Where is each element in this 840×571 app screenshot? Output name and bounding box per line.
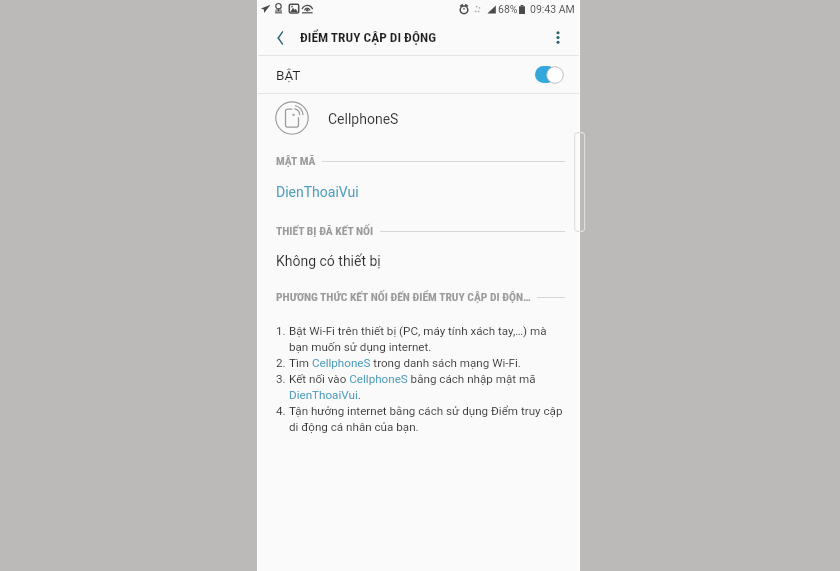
staticText: DienThoaiVui	[276, 184, 359, 200]
staticText: 3.	[276, 372, 289, 386]
staticText: 4.	[276, 404, 289, 418]
staticText: BẬT	[276, 67, 301, 83]
staticText: Kết nối vào CellphoneS bằng cách nhập mậ…	[289, 372, 565, 401]
staticText: 68%	[498, 3, 518, 15]
staticText: Tìm CellphoneS trong danh sách mạng Wi-F…	[289, 356, 521, 370]
staticText: 1.	[276, 324, 289, 338]
staticText: PHƯƠNG THỨC KẾT NỐI ĐẾN ĐIỂM TRUY CẬP DI…	[276, 290, 531, 304]
staticText: Bật Wi-Fi trên thiết bị (PC, máy tính xá…	[289, 324, 565, 353]
staticText: THIẾT BỊ ĐÃ KẾT NỐI	[276, 224, 374, 238]
staticText: 2.	[276, 356, 289, 370]
staticText: Tận hưởng internet bằng cách sử dụng Điể…	[289, 404, 565, 433]
staticText: Không có thiết bị	[276, 253, 381, 269]
button[interactable]: BẬT	[257, 56, 580, 93]
button[interactable]: CellphoneS	[257, 95, 580, 143]
button[interactable]: Back	[263, 20, 297, 55]
button[interactable]: More options	[542, 20, 574, 55]
staticText: ĐIỂM TRUY CẬP DI ĐỘNG	[300, 30, 436, 46]
staticText: MẬT MÃ	[276, 154, 316, 168]
staticText: CellphoneS	[328, 111, 399, 127]
staticText: 09:43 AM	[530, 3, 575, 15]
